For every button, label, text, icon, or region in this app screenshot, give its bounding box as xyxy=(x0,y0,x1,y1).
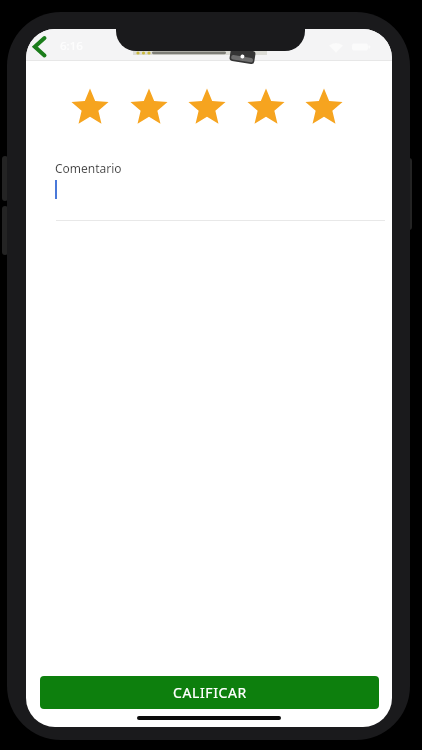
button[interactable] xyxy=(302,86,346,130)
button[interactable]: Comentario xyxy=(55,159,385,221)
button[interactable]: CALIFICAR xyxy=(40,676,379,709)
button[interactable] xyxy=(68,86,112,130)
button[interactable] xyxy=(127,86,171,130)
staticText: Comentario xyxy=(55,160,122,176)
button[interactable] xyxy=(244,86,288,130)
button[interactable] xyxy=(185,86,229,130)
button[interactable] xyxy=(28,31,58,59)
staticText: CALIFICAR xyxy=(173,683,247,702)
